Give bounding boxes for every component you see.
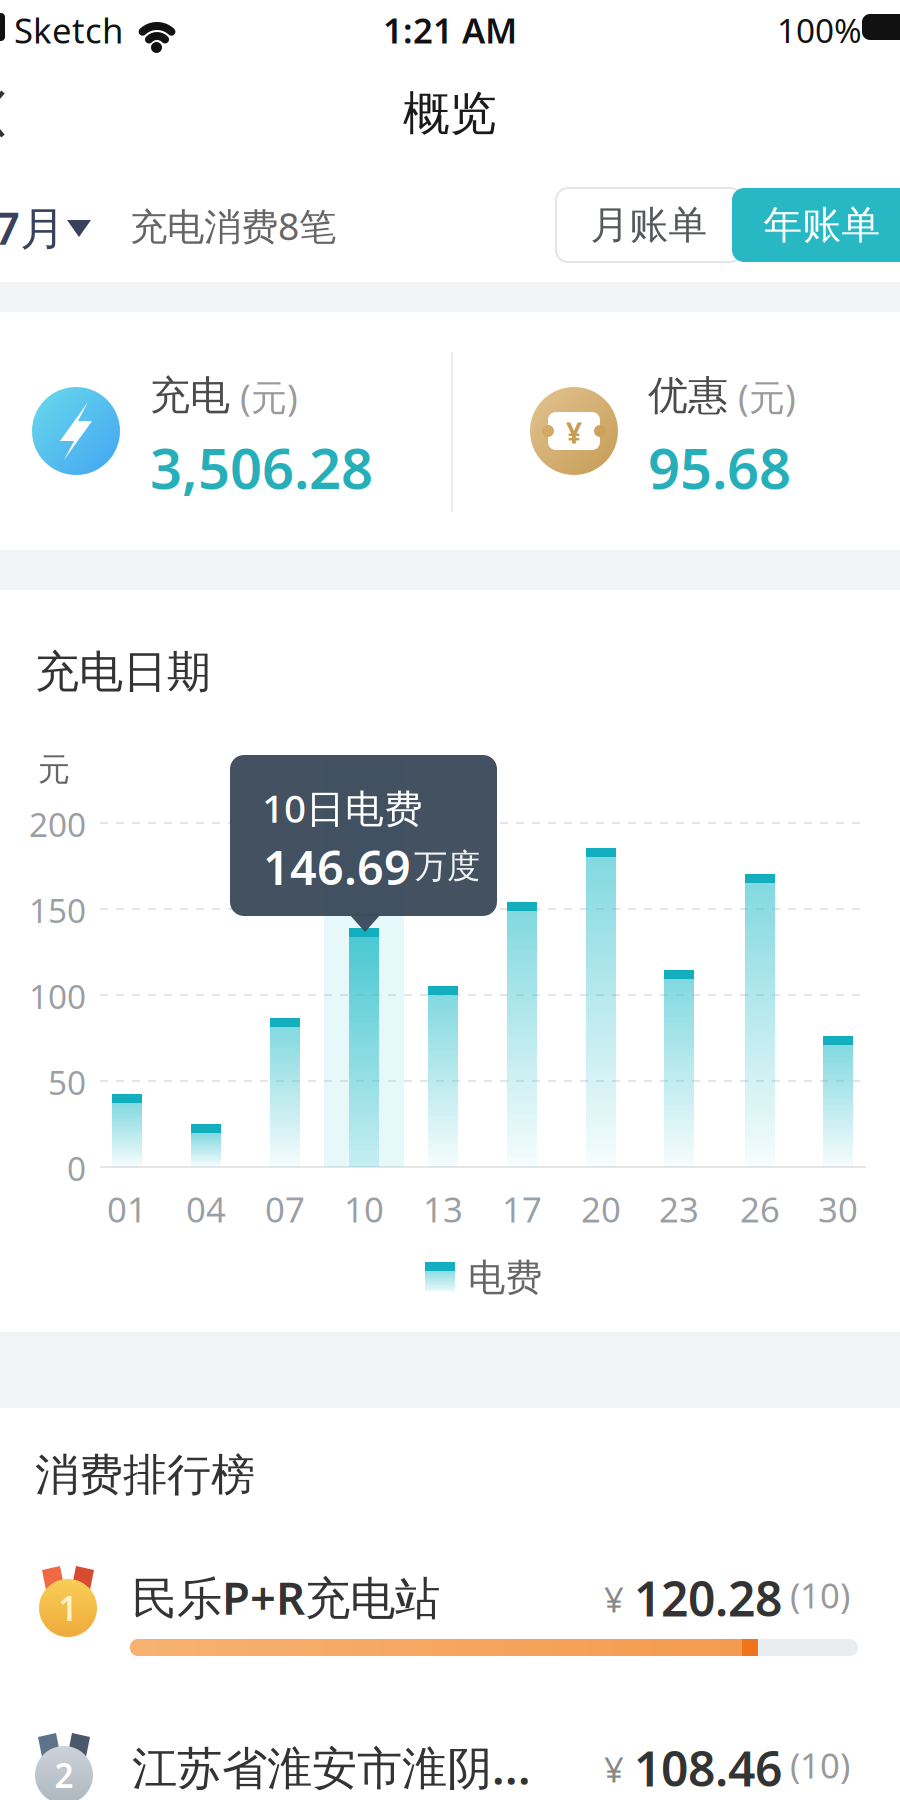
staticText: 万度 <box>414 846 480 887</box>
staticText: 0 <box>67 1146 86 1190</box>
staticText: 150 <box>29 888 86 932</box>
button[interactable] <box>0 80 44 150</box>
staticText: 120.28 <box>634 1566 782 1630</box>
staticText: 充电日期 <box>35 645 211 699</box>
staticText: 1 <box>58 1586 77 1630</box>
staticText: 概览 <box>403 85 497 142</box>
staticText: 消费排行榜 <box>35 1448 255 1502</box>
staticText: 26 <box>740 1186 780 1232</box>
staticText: 优惠 <box>648 371 728 420</box>
staticText: 108.46 <box>634 1736 782 1800</box>
staticText: 2 <box>54 1753 73 1797</box>
button[interactable]: 2 <box>0 1715 900 1800</box>
staticText: 04 <box>186 1186 226 1232</box>
staticText: ¥ <box>604 1746 624 1792</box>
staticText: 3,506.28 <box>150 430 373 504</box>
staticText: 江苏省淮安市淮阴... <box>132 1737 531 1797</box>
staticText: 月账单 <box>590 201 707 249</box>
staticText: 100 <box>29 974 86 1018</box>
staticText: 146.69 <box>263 836 411 898</box>
staticText: ¥ <box>604 1576 624 1622</box>
staticText: 01 <box>107 1186 147 1232</box>
staticText: 民乐P+R充电站 <box>132 1567 440 1627</box>
button[interactable]: 1 <box>0 1545 900 1671</box>
button[interactable]: 年账单 <box>732 188 900 262</box>
staticText: 20 <box>581 1186 621 1232</box>
button[interactable]: 月账单 <box>556 188 742 262</box>
staticText: Sketch <box>14 7 123 53</box>
staticText: 95.68 <box>648 430 791 504</box>
staticText: (10) <box>790 1572 850 1618</box>
staticText: 13 <box>423 1186 463 1232</box>
staticText: 10日电费 <box>262 782 423 833</box>
staticText: 7月 <box>0 197 65 257</box>
staticText: 200 <box>29 802 86 846</box>
staticText: ¥ <box>566 414 582 451</box>
staticText: 10 <box>344 1186 384 1232</box>
staticText: 50 <box>48 1060 86 1104</box>
staticText: 元 <box>38 750 70 789</box>
staticText: 07 <box>265 1186 305 1232</box>
staticText: (10) <box>790 1742 850 1788</box>
staticText: 30 <box>818 1186 858 1232</box>
staticText: 1:21 AM <box>383 7 517 53</box>
staticText: 电费 <box>468 1255 542 1301</box>
staticText: 充电 <box>150 371 230 420</box>
staticText: 17 <box>502 1186 542 1232</box>
staticText: 100% <box>777 8 862 52</box>
staticText: (元) <box>240 373 298 421</box>
staticText: 充电消费8笔 <box>130 201 336 251</box>
staticText: (元) <box>738 373 796 421</box>
button[interactable]: 7月 <box>0 185 100 275</box>
staticText: 23 <box>659 1186 699 1232</box>
staticText: 年账单 <box>763 201 880 249</box>
